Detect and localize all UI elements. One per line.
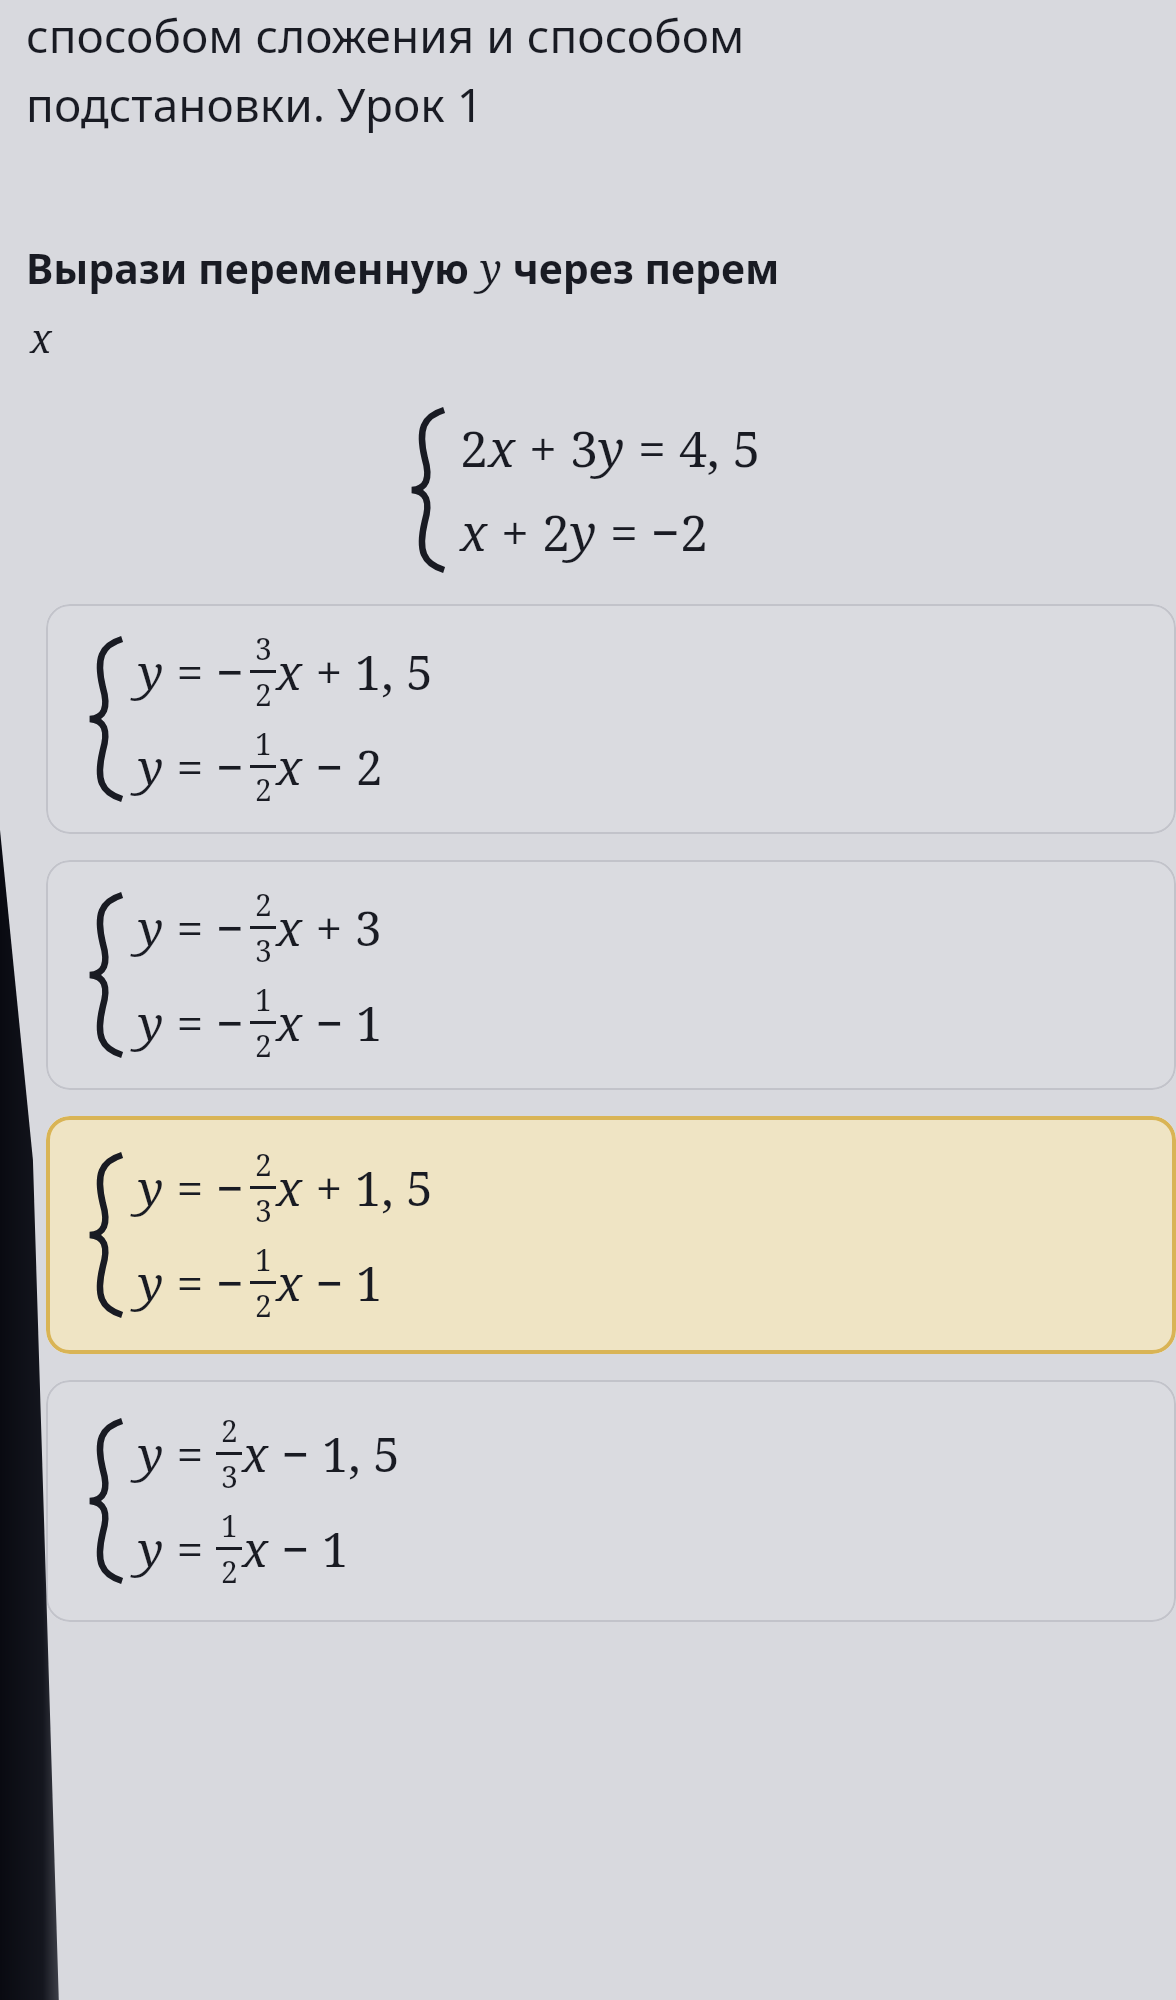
staticText: − xyxy=(216,1155,244,1220)
staticText: x xyxy=(242,1421,269,1486)
staticText: = xyxy=(164,1250,216,1315)
staticText: 1 xyxy=(255,979,272,1020)
button[interactable]: y xyxy=(46,604,1176,834)
button[interactable]: y xyxy=(46,1380,1176,1622)
staticText: 2 xyxy=(460,414,488,482)
staticText: 3 xyxy=(221,1456,238,1497)
staticText: x xyxy=(276,734,303,799)
staticText: y xyxy=(138,639,164,704)
staticText: 2 xyxy=(221,1410,238,1451)
staticText: 3 xyxy=(570,414,598,482)
staticText: = xyxy=(164,639,216,704)
staticText: − xyxy=(216,1250,244,1315)
staticText: x xyxy=(242,1516,269,1581)
staticText: + xyxy=(516,414,570,482)
staticText: x xyxy=(276,639,303,704)
staticText: − 1 xyxy=(303,990,383,1055)
staticText: − 1 xyxy=(269,1516,349,1581)
staticText: y xyxy=(138,734,164,799)
staticText: − 1 xyxy=(303,1250,383,1315)
staticText: = xyxy=(164,1155,216,1220)
staticText: x xyxy=(276,895,303,960)
staticText: 2 xyxy=(255,1025,272,1066)
staticText: 2 xyxy=(255,1285,272,1326)
staticText: 3 xyxy=(255,628,272,669)
staticText: 2 xyxy=(255,884,272,925)
staticText: = xyxy=(164,1421,216,1486)
staticText: 3 xyxy=(255,1190,272,1231)
staticText: + 1, 5 xyxy=(303,1155,433,1220)
staticText: y xyxy=(138,895,164,960)
staticText: x xyxy=(488,414,516,482)
staticText: y xyxy=(598,414,625,482)
staticText: = xyxy=(164,734,216,799)
staticText: 2 xyxy=(255,1144,272,1185)
staticText: x xyxy=(276,1155,303,1220)
staticText: x xyxy=(30,310,52,364)
staticText: − xyxy=(216,639,244,704)
staticText: y xyxy=(138,1516,164,1581)
staticText: 2 xyxy=(221,1551,238,1592)
staticText: 2 xyxy=(255,769,272,810)
staticText: через перем xyxy=(502,240,780,296)
staticText: = xyxy=(164,895,216,960)
staticText: 3 xyxy=(255,930,272,971)
staticText: Вырази переменную xyxy=(26,240,480,296)
staticText: способом сложения и способом xyxy=(26,4,745,67)
staticText: = xyxy=(164,990,216,1055)
staticText: 2 xyxy=(255,674,272,715)
staticText: − 1, 5 xyxy=(269,1421,400,1486)
staticText: 2 xyxy=(542,498,570,566)
staticText: = xyxy=(164,1516,216,1581)
staticText: y xyxy=(138,1250,164,1315)
staticText: y xyxy=(480,240,502,296)
staticText: + 1, 5 xyxy=(303,639,433,704)
staticText: = −2 xyxy=(597,498,708,566)
staticText: − xyxy=(216,895,244,960)
staticText: 1 xyxy=(255,1239,272,1280)
staticText: 1 xyxy=(255,723,272,764)
staticText: y xyxy=(138,1155,164,1220)
staticText: + xyxy=(488,498,542,566)
staticText: 1 xyxy=(221,1505,238,1546)
staticText: y xyxy=(138,990,164,1055)
staticText: x xyxy=(276,990,303,1055)
staticText: y xyxy=(138,1421,164,1486)
button[interactable]: y xyxy=(46,1116,1176,1354)
button[interactable]: y xyxy=(46,860,1176,1090)
staticText: x xyxy=(460,498,488,566)
staticText: + 3 xyxy=(303,895,382,960)
staticText: = 4, 5 xyxy=(625,414,761,482)
staticText: y xyxy=(570,498,597,566)
staticText: − xyxy=(216,990,244,1055)
staticText: − xyxy=(216,734,244,799)
staticText: − 2 xyxy=(303,734,383,799)
staticText: подстановки. Урок 1 xyxy=(26,73,483,136)
staticText: x xyxy=(276,1250,303,1315)
